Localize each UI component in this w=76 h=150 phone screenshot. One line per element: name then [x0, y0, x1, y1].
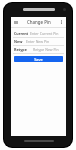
button[interactable]: Current Pin [11, 30, 66, 38]
staticText: New Pin [14, 39, 25, 44]
button[interactable]: More options [59, 18, 64, 26]
staticText: Change Pin [27, 19, 51, 25]
staticText: Current Pin [14, 31, 29, 36]
button[interactable]: Save [14, 56, 63, 62]
button[interactable]: Open navigation menu [13, 18, 19, 26]
staticText: Retype New Pin [33, 47, 59, 52]
staticText: Save [34, 57, 43, 62]
button[interactable]: New Pin [11, 38, 66, 46]
staticText: Enter Current Pin [30, 31, 59, 36]
staticText: Retype New Pin [14, 47, 32, 52]
button[interactable]: Retype New Pin [11, 46, 66, 54]
staticText: Enter New Pin [26, 39, 50, 44]
